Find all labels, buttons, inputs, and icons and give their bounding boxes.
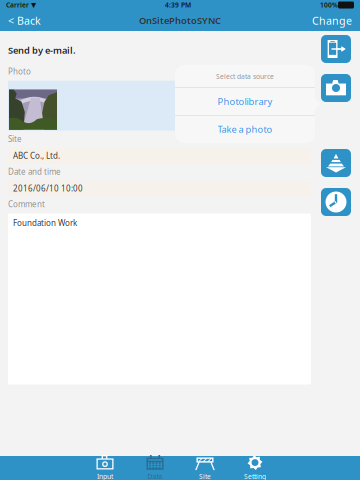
staticText: Change [312, 13, 352, 28]
button[interactable]: Change [304, 9, 360, 31]
staticText: Take a photo [217, 123, 272, 135]
staticText: 100% [320, 1, 338, 9]
staticText: Photolibrary [217, 95, 272, 108]
staticText: < Back [8, 13, 41, 28]
staticText: 4:39 PM [165, 1, 191, 9]
staticText: Carrier [6, 1, 29, 9]
staticText: Foundation Work [13, 217, 77, 228]
staticText: Site [199, 472, 211, 480]
button[interactable]: Input [80, 456, 130, 480]
staticText: Input [97, 472, 113, 480]
button[interactable]: Photolibrary [175, 88, 315, 115]
staticText: Data [147, 472, 162, 480]
button[interactable]: Setting [230, 456, 280, 480]
staticText: Comment [8, 199, 45, 209]
button[interactable]: Camera [321, 74, 351, 102]
button[interactable]: Time [321, 188, 351, 216]
staticText: ▼ [29, 1, 36, 9]
button[interactable]: Take a photo [175, 116, 315, 143]
button[interactable]: Site [180, 456, 230, 480]
staticText: Send by e-mail. [8, 44, 76, 56]
staticText: Select data source [216, 72, 274, 81]
button[interactable]: Export [321, 35, 351, 63]
button[interactable]: Data [130, 456, 180, 480]
staticText: Date and time [8, 166, 61, 177]
staticText: ABC Co., Ltd. [13, 150, 60, 161]
button[interactable]: Site [321, 149, 351, 177]
staticText: Setting [244, 472, 266, 480]
button[interactable]: < Back [0, 9, 49, 31]
staticText: Photo [8, 66, 31, 77]
staticText: Site [8, 134, 22, 144]
staticText: 2016/06/10 10:00 [13, 183, 83, 194]
staticText: OnSitePhotoSYNC [139, 14, 221, 27]
